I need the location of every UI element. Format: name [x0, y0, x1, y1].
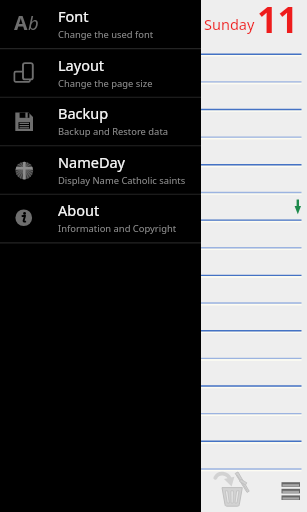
- staticText: Sunday: [204, 14, 255, 34]
- staticText: Backup and Restore data: [58, 125, 169, 138]
- staticText: Layout: [58, 55, 105, 75]
- staticText: About: [58, 200, 100, 220]
- button[interactable]: About: [0, 194, 201, 243]
- staticText: Display Name Catholic saints: [58, 174, 186, 187]
- staticText: NameDay: [58, 152, 126, 172]
- staticText: Change the used font: [58, 28, 154, 41]
- button[interactable]: Delete note: [212, 470, 252, 510]
- button[interactable]: Menu: [275, 476, 305, 502]
- staticText: A: [14, 9, 28, 35]
- button[interactable]: NameDay: [0, 146, 201, 195]
- staticText: Backup: [58, 103, 109, 123]
- button[interactable]: Layout: [0, 49, 201, 98]
- staticText: 11: [257, 0, 299, 44]
- staticText: Change the page size: [58, 77, 153, 90]
- staticText: Font: [58, 6, 89, 26]
- staticText: Information and Copyright: [58, 222, 177, 235]
- staticText: b: [28, 10, 39, 35]
- button[interactable]: Backup: [0, 97, 201, 146]
- button[interactable]: A: [0, 0, 201, 49]
